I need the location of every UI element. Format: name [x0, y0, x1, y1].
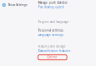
- staticText: Regional settings: [38, 29, 63, 32]
- button[interactable]: Show Settings: [0, 0, 27, 7]
- button[interactable]: Pair sharing opted: [38, 5, 64, 9]
- staticText: Delete: [47, 55, 57, 59]
- button[interactable]: Delete: [38, 55, 67, 60]
- staticText: Features and storage: [38, 45, 66, 48]
- button[interactable]: Language settings: [38, 33, 63, 37]
- staticText: Language settings: [38, 33, 63, 37]
- staticText: Pair sharing opted: [38, 5, 64, 9]
- staticText: Region and language: [38, 20, 69, 24]
- staticText: Manage push statistics: [38, 1, 67, 4]
- button[interactable]: Data collection features: [38, 49, 70, 53]
- staticText: Show Settings: [8, 3, 27, 7]
- staticText: Data collection features: [38, 49, 70, 53]
